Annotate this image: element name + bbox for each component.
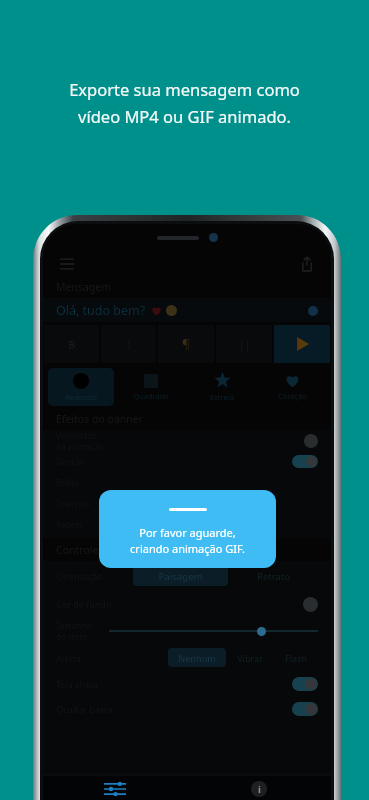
staticText: Coração [278,391,307,401]
staticText: Olá, tudo bem? [56,302,146,319]
button[interactable]: Vibrar [226,648,274,667]
button[interactable]: Controles [43,775,187,800]
staticText: Exporte sua mensagem como [69,78,300,100]
staticText: Vibrar [237,652,263,664]
staticText: Controles do banner [56,543,158,557]
button[interactable]: Quadrado [118,368,184,406]
staticText: I [127,337,131,352]
staticText: Mensagem [56,280,112,294]
staticText: Estrela [210,392,234,402]
button[interactable] [292,702,318,716]
button[interactable]: Paisagem [133,566,228,586]
staticText: Paisagem [158,570,203,583]
staticText: Quadrado [133,391,169,401]
staticText: Retrato [257,570,290,583]
staticText: Flash [285,652,307,664]
button[interactable]: Compartilhar [295,252,319,276]
button[interactable] [292,677,318,691]
button[interactable]: Por favor aguarde, [99,490,276,568]
button[interactable]: ¶ [158,325,214,363]
staticText: ¶ [182,336,190,352]
staticText: || [238,337,251,352]
button[interactable]: Flash [274,648,318,667]
staticText: Efeitos do banner [56,412,144,426]
button[interactable]: Coração [259,368,326,406]
button[interactable]: Menu [55,252,79,276]
button[interactable]: Estrela [188,368,255,406]
button[interactable]: Nenhum [168,648,226,667]
staticText: i [258,783,261,796]
staticText: criando animação GIF. [130,541,245,556]
button[interactable]: Retrato [228,566,318,586]
button[interactable] [274,325,330,363]
staticText: Redondo [65,392,97,402]
staticText: vídeo MP4 ou GIF animado. [78,105,291,127]
button[interactable]: Redondo [48,368,114,406]
staticText: Brilho [56,477,79,488]
staticText: B [68,337,76,352]
button[interactable]: Olá, tudo bem? [43,298,331,322]
staticText: Por favor aguarde, [139,525,236,540]
staticText: Nenhum [178,652,216,664]
button[interactable]: i [187,775,331,800]
